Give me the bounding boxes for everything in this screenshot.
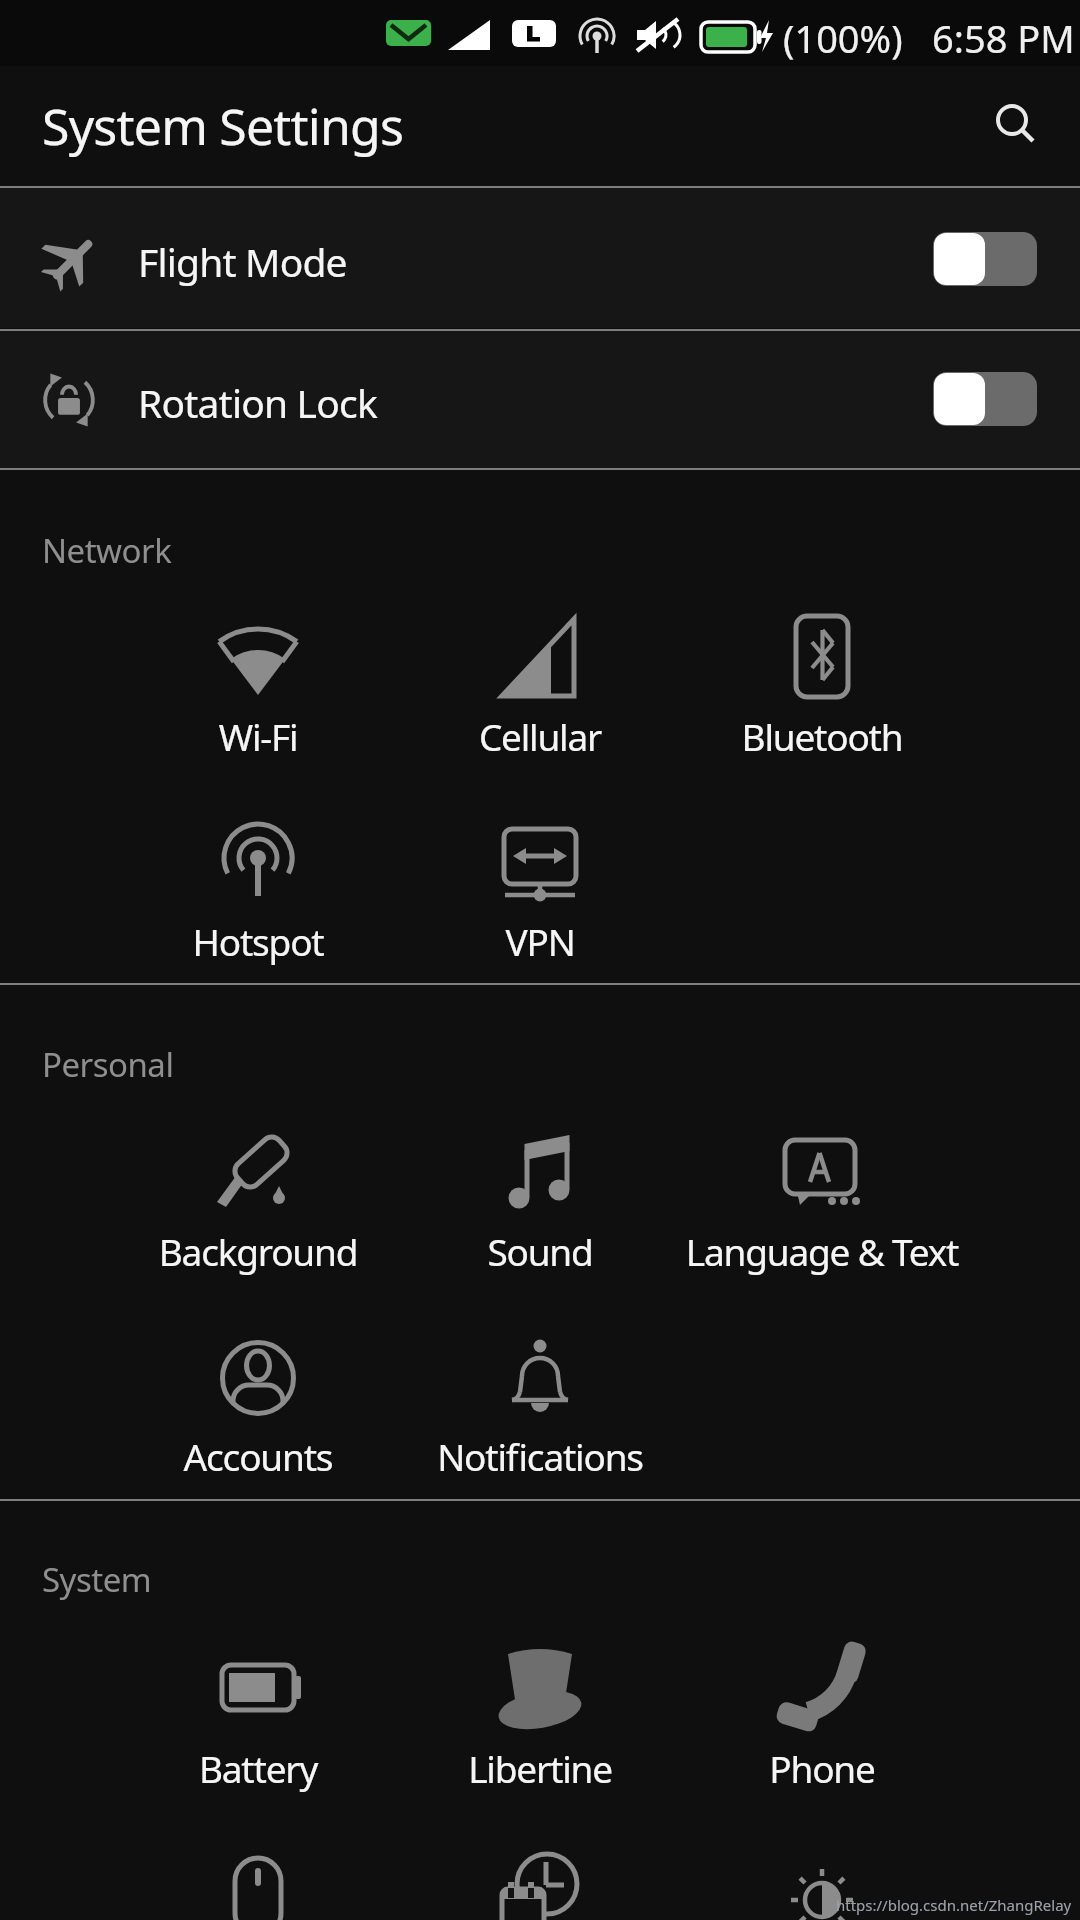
staticText: Wi-Fi	[88, 711, 428, 761]
staticText: Phone	[652, 1743, 992, 1793]
button[interactable]: Sound	[370, 1126, 710, 1282]
button[interactable]	[88, 1852, 428, 1920]
button[interactable]: Libertine	[370, 1642, 710, 1799]
staticText: Accounts	[88, 1431, 428, 1481]
staticText: Sound	[370, 1226, 710, 1276]
button[interactable]: VPN	[370, 816, 710, 972]
staticText: Cellular	[370, 711, 710, 761]
staticText: System Settings	[42, 92, 404, 160]
staticText: Notifications	[370, 1431, 710, 1481]
button[interactable]: Notifications	[370, 1336, 710, 1487]
staticText: Personal	[42, 1042, 174, 1087]
button[interactable]: Accounts	[88, 1336, 428, 1487]
staticText: Rotation Lock	[138, 376, 377, 429]
button[interactable]: Hotspot	[88, 816, 428, 972]
staticText: Background	[88, 1226, 428, 1276]
staticText: VPN	[370, 916, 710, 966]
button[interactable]: Background	[88, 1126, 428, 1282]
staticText: Language & Text	[652, 1226, 992, 1276]
button[interactable]: Language & Text	[652, 1126, 992, 1282]
button[interactable]: Phone	[652, 1642, 992, 1799]
staticText: 6:58 PM	[932, 12, 1075, 64]
button[interactable]: Flight Mode	[0, 188, 1080, 328]
button[interactable]: Cellular	[370, 610, 710, 767]
button[interactable]	[652, 1852, 992, 1920]
staticText: System	[42, 1557, 152, 1602]
button[interactable]	[933, 232, 1037, 286]
button[interactable]	[370, 1852, 710, 1920]
staticText: (100%)	[783, 12, 903, 64]
staticText: Hotspot	[88, 916, 428, 966]
button[interactable]: Rotation Lock	[0, 331, 1080, 468]
staticText: Flight Mode	[138, 235, 347, 288]
button[interactable]	[933, 372, 1037, 426]
staticText: Network	[42, 528, 172, 573]
button[interactable]: Bluetooth	[652, 610, 992, 767]
staticText: https://blog.csdn.net/ZhangRelay	[836, 1895, 1072, 1915]
button[interactable]: Battery	[88, 1642, 428, 1799]
button[interactable]: Wi-Fi	[88, 610, 428, 767]
staticText: Battery	[88, 1743, 428, 1793]
staticText: Libertine	[370, 1743, 710, 1793]
button[interactable]	[988, 98, 1040, 150]
staticText: Bluetooth	[652, 711, 992, 761]
